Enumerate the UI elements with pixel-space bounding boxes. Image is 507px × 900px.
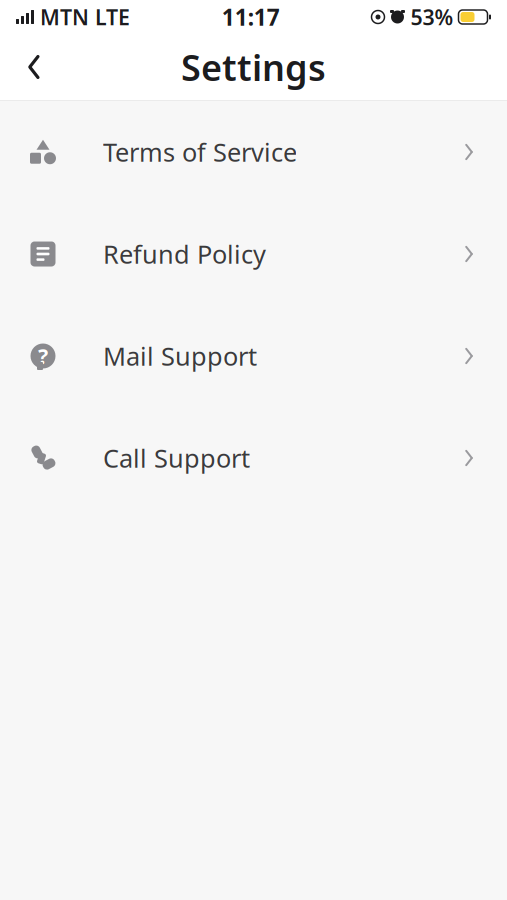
staticText: 53% bbox=[410, 3, 453, 31]
button[interactable]: Terms of Service bbox=[0, 101, 507, 203]
staticText: Refund Policy bbox=[103, 237, 266, 271]
staticText: ? bbox=[38, 342, 48, 370]
staticText: Settings bbox=[181, 43, 326, 91]
button[interactable]: Refund Policy bbox=[0, 203, 507, 305]
staticText: 11:17 bbox=[222, 2, 280, 32]
staticText: LTE bbox=[95, 3, 130, 31]
staticText: Mail Support bbox=[103, 339, 257, 373]
button[interactable]: ? bbox=[0, 305, 507, 407]
staticText: Call Support bbox=[103, 441, 250, 475]
button[interactable]: Back bbox=[8, 41, 60, 93]
staticText: MTN bbox=[40, 3, 89, 31]
button[interactable]: Call Support bbox=[0, 407, 507, 509]
staticText: Terms of Service bbox=[103, 135, 297, 169]
